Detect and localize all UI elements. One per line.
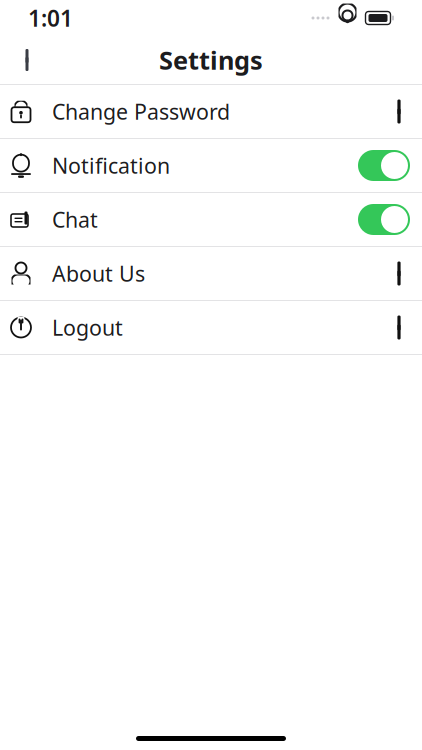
button[interactable]: About Us (0, 247, 422, 300)
button[interactable]: Notification (0, 139, 422, 192)
button[interactable]: Change Password (0, 85, 422, 138)
staticText: 1:01 (28, 3, 73, 33)
button[interactable]: Chat (0, 193, 422, 246)
staticText: Change Password (52, 97, 230, 126)
staticText: Notification (52, 151, 170, 180)
staticText: Chat (52, 205, 98, 234)
staticText: About Us (52, 259, 145, 288)
button[interactable]: Logout (0, 301, 422, 354)
staticText: Logout (52, 313, 123, 342)
button[interactable]: Back (8, 38, 52, 82)
staticText: Settings (159, 43, 263, 77)
